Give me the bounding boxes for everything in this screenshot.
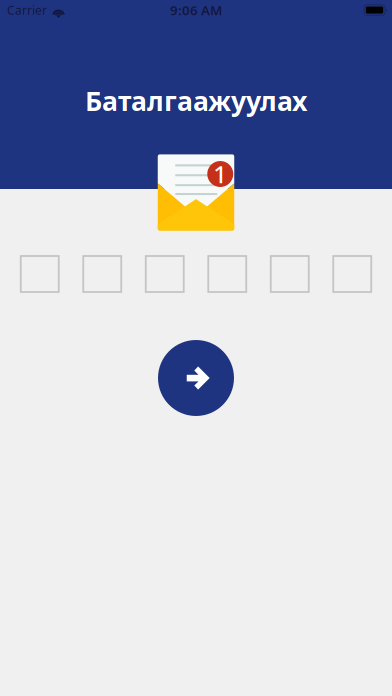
button[interactable]: Verification digit	[208, 256, 246, 292]
button[interactable]: Verification digit	[21, 256, 59, 292]
button[interactable]: Continue	[158, 340, 234, 416]
staticText: Баталгаажуулах	[85, 83, 307, 118]
button[interactable]: Verification digit	[333, 256, 371, 292]
staticText: 1	[213, 158, 227, 190]
button[interactable]: Verification digit	[146, 256, 184, 292]
button[interactable]: Verification digit	[83, 256, 121, 292]
staticText: 9:06 AM	[170, 1, 222, 19]
staticText: Carrier	[7, 2, 47, 18]
button[interactable]: Verification digit	[271, 256, 309, 292]
